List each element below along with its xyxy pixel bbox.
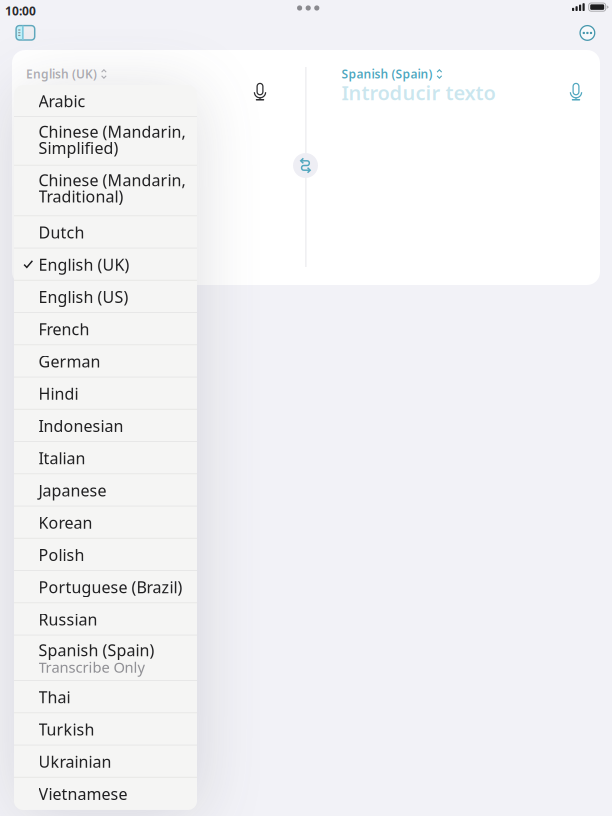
button[interactable]: Turkish: [14, 713, 197, 745]
staticText: Thai: [38, 686, 70, 708]
staticText: Dutch: [38, 222, 84, 243]
staticText: Japanese: [38, 480, 106, 501]
staticText: Introducir texto: [341, 79, 495, 106]
staticText: 10:00: [5, 3, 36, 19]
button[interactable]: Russian: [14, 603, 197, 635]
staticText: Hindi: [38, 383, 78, 404]
staticText: Spanish (Spain): [341, 66, 432, 82]
staticText: Transcribe Only: [38, 657, 144, 677]
staticText: English (US): [38, 286, 128, 307]
staticText: Portuguese (Brazil): [38, 576, 182, 598]
staticText: Vietnamese: [38, 783, 127, 804]
staticText: Korean: [38, 512, 92, 533]
button[interactable]: Listen in Spanish: [565, 78, 587, 106]
button[interactable]: Japanese: [14, 474, 197, 506]
staticText: English (UK): [26, 66, 97, 82]
staticText: German: [38, 351, 100, 372]
staticText: Spanish (Spain): [38, 639, 154, 660]
button[interactable]: Hindi: [14, 377, 197, 410]
button[interactable]: More options: [572, 18, 603, 48]
staticText: Simplified): [38, 137, 118, 158]
button[interactable]: Vietnamese: [14, 778, 197, 810]
staticText: Turkish: [38, 719, 94, 740]
staticText: Italian: [38, 447, 85, 469]
button[interactable]: Polish: [14, 539, 197, 571]
button[interactable]: Swap languages: [293, 153, 318, 178]
staticText: Ukrainian: [38, 751, 111, 772]
button[interactable]: Italian: [14, 442, 197, 474]
staticText: French: [38, 318, 89, 340]
button[interactable]: Ukrainian: [14, 745, 197, 778]
button[interactable]: Arabic: [14, 85, 197, 117]
button[interactable]: Korean: [14, 506, 197, 539]
button[interactable]: Chinese (Mandarin,: [14, 117, 197, 166]
button[interactable]: English (UK): [26, 63, 107, 85]
staticText: Chinese (Mandarin,: [38, 121, 185, 142]
button[interactable]: Introducir texto: [341, 81, 591, 103]
staticText: Polish: [38, 544, 84, 565]
button[interactable]: Spanish (Spain): [341, 63, 442, 85]
button[interactable]: Dutch: [14, 216, 197, 248]
button[interactable]: English (UK): [14, 248, 197, 281]
button[interactable]: Chinese (Mandarin,: [14, 166, 197, 216]
button[interactable]: Spanish (Spain): [14, 635, 197, 681]
button[interactable]: Portuguese (Brazil): [14, 571, 197, 603]
staticText: Traditional): [38, 186, 123, 207]
button[interactable]: Thai: [14, 681, 197, 713]
staticText: Indonesian: [38, 415, 123, 436]
staticText: English (UK): [38, 254, 129, 275]
staticText: Chinese (Mandarin,: [38, 169, 185, 191]
button[interactable]: Show Sidebar: [8, 18, 43, 48]
staticText: Arabic: [38, 90, 85, 112]
button[interactable]: Listen in English: [249, 78, 271, 106]
button[interactable]: Indonesian: [14, 410, 197, 442]
button[interactable]: English (US): [14, 281, 197, 313]
button[interactable]: German: [14, 345, 197, 377]
staticText: Russian: [38, 609, 97, 630]
button[interactable]: French: [14, 313, 197, 345]
